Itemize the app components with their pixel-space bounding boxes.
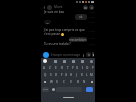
button[interactable]: D xyxy=(54,71,59,78)
staticText: J'ai pas trop compris ce que xyxy=(44,28,85,32)
staticText: Marie xyxy=(54,5,63,9)
button[interactable]: Toolbar item xyxy=(81,60,84,63)
staticText: V xyxy=(70,80,72,84)
button[interactable]: Shift xyxy=(41,78,48,85)
staticText: L xyxy=(86,73,88,77)
button[interactable]: Z xyxy=(47,64,53,71)
staticText: G xyxy=(65,73,68,77)
staticText: 13:30 xyxy=(88,36,95,39)
staticText: T xyxy=(67,66,69,70)
button[interactable]: ok xyxy=(44,20,51,24)
staticText: E xyxy=(55,66,57,70)
button[interactable]: Camera xyxy=(86,52,91,57)
button[interactable]: Video call xyxy=(83,5,88,10)
button[interactable]: . xyxy=(82,87,86,92)
button[interactable]: R xyxy=(59,64,65,71)
button[interactable]: A xyxy=(41,64,47,71)
staticText: ok xyxy=(79,15,83,19)
staticText: ?123 xyxy=(43,88,48,91)
button[interactable]: Back xyxy=(42,5,47,10)
button[interactable]: L xyxy=(84,71,89,78)
button[interactable]: H xyxy=(69,71,74,78)
button[interactable]: Enter xyxy=(86,87,93,92)
staticText: W xyxy=(50,80,53,84)
button[interactable]: Call xyxy=(89,5,94,10)
button[interactable]: Voice message xyxy=(92,52,94,57)
staticText: . xyxy=(84,88,85,92)
staticText: Y xyxy=(72,66,74,70)
staticText: 13:32 xyxy=(88,42,95,45)
staticText: F xyxy=(61,73,63,77)
staticText: P xyxy=(92,66,94,70)
button[interactable]: Toolbar item xyxy=(72,60,75,63)
button[interactable]: More xyxy=(90,60,93,63)
staticText: M xyxy=(90,73,93,77)
button[interactable]: V xyxy=(67,78,74,85)
button[interactable]: ok xyxy=(75,14,87,20)
button[interactable]: S xyxy=(48,71,54,78)
staticText: 13:26 xyxy=(88,20,95,23)
button[interactable]: Google xyxy=(43,59,47,63)
button[interactable]: E xyxy=(53,64,59,71)
button[interactable]: P xyxy=(90,64,95,71)
button[interactable]: I xyxy=(80,64,85,71)
staticText: Q xyxy=(44,73,47,77)
staticText: Tu es une tralala ? xyxy=(44,42,71,46)
button[interactable]: N xyxy=(81,78,88,85)
button[interactable]: K xyxy=(79,71,84,78)
staticText: 13:25 xyxy=(88,15,95,18)
button[interactable]: J xyxy=(74,71,79,78)
staticText: R xyxy=(61,66,63,70)
button[interactable]: Toolbar item xyxy=(63,60,66,63)
button[interactable]: Y xyxy=(70,64,75,71)
button[interactable]: Emoji xyxy=(50,87,56,92)
button[interactable]: Attach file xyxy=(81,53,85,57)
staticText: Z xyxy=(49,66,51,70)
staticText: I xyxy=(82,66,84,70)
button[interactable]: ?123 xyxy=(42,87,49,92)
button[interactable]: G xyxy=(64,71,69,78)
button[interactable]: M xyxy=(89,71,94,78)
button[interactable]: W xyxy=(48,78,54,85)
staticText: J xyxy=(76,73,77,77)
button[interactable]: B xyxy=(74,78,81,85)
button[interactable]: Toolbar item xyxy=(54,60,57,63)
staticText: ressemblant xyxy=(69,38,87,42)
button[interactable]: Q xyxy=(42,71,48,78)
button[interactable]: U xyxy=(75,64,80,71)
staticText: Je suis en bas xyxy=(44,10,65,14)
staticText: X xyxy=(56,80,58,84)
staticText: c'est passe xyxy=(44,32,61,36)
button[interactable]: Backspace xyxy=(88,78,95,85)
button[interactable]: ressemblant xyxy=(69,37,87,42)
button[interactable]: Add xyxy=(43,52,49,58)
staticText: Envoyer un message xyxy=(51,53,81,57)
staticText: D xyxy=(55,73,58,77)
staticText: K xyxy=(81,73,83,77)
staticText: S xyxy=(50,73,52,77)
button[interactable]: C xyxy=(60,78,67,85)
staticText: C xyxy=(63,80,65,84)
staticText: 13:29 xyxy=(88,29,95,32)
button[interactable]: X xyxy=(54,78,60,85)
button[interactable]: T xyxy=(65,64,70,71)
staticText: O xyxy=(86,66,89,70)
staticText: A xyxy=(43,66,45,70)
staticText: 13:24 xyxy=(88,10,95,13)
button[interactable]: F xyxy=(59,71,64,78)
staticText: H xyxy=(70,73,73,77)
staticText: U xyxy=(76,66,79,70)
staticText: B xyxy=(77,80,79,84)
staticText: N xyxy=(83,80,86,84)
staticText: ok xyxy=(46,21,49,24)
button[interactable]: O xyxy=(85,64,90,71)
